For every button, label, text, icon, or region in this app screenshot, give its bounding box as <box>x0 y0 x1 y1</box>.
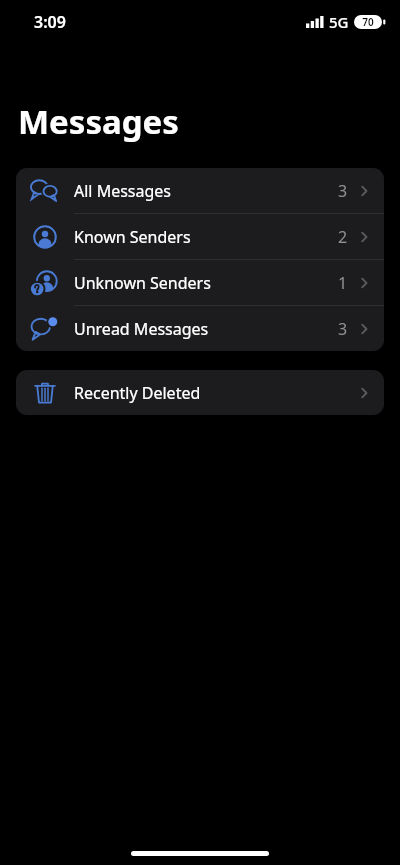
staticText: 5G <box>329 12 349 32</box>
button[interactable]: Unread Messages <box>16 306 384 351</box>
button[interactable]: Unknown Senders <box>16 260 384 305</box>
staticText: Unread Messages <box>74 318 338 340</box>
staticText: 3:09 <box>34 11 66 33</box>
button[interactable]: Known Senders <box>16 214 384 259</box>
staticText: All Messages <box>74 180 338 202</box>
staticText: 3 <box>338 180 348 202</box>
button[interactable]: Recently Deleted <box>16 370 384 415</box>
staticText: Unknown Senders <box>74 272 338 294</box>
staticText: 70 <box>362 15 374 29</box>
staticText: 1 <box>338 272 348 294</box>
staticText: Known Senders <box>74 226 338 248</box>
staticText: 2 <box>338 226 348 248</box>
staticText: Messages <box>18 99 179 144</box>
staticText: Recently Deleted <box>74 382 360 404</box>
staticText: 3 <box>338 318 348 340</box>
button[interactable]: All Messages <box>16 168 384 213</box>
